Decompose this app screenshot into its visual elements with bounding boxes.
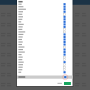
- button[interactable]: Toggle column 11: [17, 33, 73, 36]
- button[interactable]: Toggle column 7: [17, 21, 73, 24]
- button[interactable]: Toggle column 9: [17, 27, 73, 30]
- button[interactable]: Apply: [64, 81, 71, 85]
- button[interactable]: Toggle column 17: [17, 51, 73, 54]
- button[interactable]: Toggle column 4: [17, 12, 73, 15]
- button[interactable]: Toggle column 5: [17, 15, 73, 18]
- button[interactable]: Toggle column 21: [17, 63, 73, 66]
- button[interactable]: Toggle column 1: [17, 3, 73, 6]
- button[interactable]: Toggle column 27: [17, 81, 73, 84]
- button[interactable]: Toggle column 25: [17, 75, 73, 78]
- button[interactable]: Toggle column 28: [17, 84, 73, 87]
- button[interactable]: Toggle column 18: [17, 54, 73, 57]
- button[interactable]: Toggle column 22: [17, 66, 73, 69]
- button[interactable]: Toggle column 13: [17, 39, 73, 42]
- button[interactable]: Toggle column 10: [17, 30, 73, 33]
- button[interactable]: Toggle column 6: [17, 18, 73, 21]
- button[interactable]: Toggle column 24: [17, 72, 73, 75]
- button[interactable]: Toggle column 15: [17, 45, 73, 48]
- button[interactable]: Toggle column 19: [17, 57, 73, 60]
- button[interactable]: Toggle column 20: [17, 60, 73, 63]
- button[interactable]: Toggle column 16: [17, 48, 73, 51]
- button[interactable]: Select all columns: [17, 75, 73, 79]
- button[interactable]: Toggle column 26: [17, 78, 73, 81]
- button[interactable]: Toggle column 8: [17, 24, 73, 27]
- button[interactable]: Cancel: [56, 81, 63, 85]
- button[interactable]: Toggle column 14: [17, 42, 73, 45]
- button[interactable]: Toggle column 12: [17, 36, 73, 39]
- button[interactable]: Toggle column 23: [17, 69, 73, 72]
- button[interactable]: Toggle column 3: [17, 9, 73, 12]
- button[interactable]: Toggle column 2: [17, 6, 73, 9]
